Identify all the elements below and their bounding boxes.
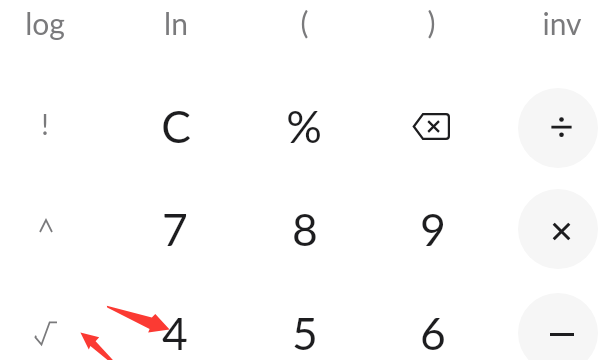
button[interactable]: 8 — [241, 177, 369, 280]
button[interactable]: ) — [367, 0, 495, 73]
button[interactable]: 7 — [111, 177, 239, 280]
button[interactable]: inv — [498, 0, 600, 74]
staticText: 4 — [162, 306, 188, 359]
button[interactable]: 6 — [369, 281, 497, 360]
staticText: 7 — [162, 202, 188, 255]
button[interactable]: log — [0, 0, 109, 74]
button[interactable]: ( — [240, 0, 368, 73]
button[interactable]: 9 — [369, 177, 497, 280]
button[interactable]: Multiply — [518, 189, 598, 269]
staticText: 5 — [292, 306, 318, 359]
staticText: ln — [164, 5, 188, 41]
button[interactable]: Power — [0, 174, 110, 277]
button[interactable]: Subtract — [518, 293, 598, 360]
staticText: 6 — [420, 306, 446, 359]
staticText: ( — [300, 4, 309, 40]
staticText: ! — [41, 107, 49, 141]
staticText: C — [161, 99, 191, 152]
button[interactable]: ln — [112, 0, 240, 74]
button[interactable]: % — [240, 74, 368, 177]
button[interactable]: Square root — [0, 282, 110, 360]
staticText: 8 — [292, 202, 318, 255]
button[interactable]: 5 — [241, 281, 369, 360]
staticText: log — [25, 5, 65, 41]
button[interactable]: Backspace — [367, 75, 495, 178]
button[interactable]: 4 — [111, 281, 239, 360]
staticText: % — [286, 99, 322, 152]
staticText: ) — [427, 4, 436, 40]
button[interactable]: Divide — [518, 88, 598, 168]
staticText: 9 — [420, 202, 446, 255]
button[interactable]: ! — [0, 72, 109, 175]
button[interactable]: C — [112, 74, 240, 177]
staticText: inv — [542, 5, 582, 41]
